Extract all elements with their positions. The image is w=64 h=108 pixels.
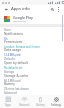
staticText: Permissions: [4, 40, 23, 44]
staticText: 2% since last charge: [4, 87, 29, 90]
staticText: No defaults set: [4, 66, 23, 69]
staticText: Network: [19, 103, 30, 107]
staticText: Defaults: [4, 57, 15, 61]
button[interactable]: Open by default: [0, 61, 64, 69]
button[interactable]: Back: [3, 6, 9, 12]
staticText: 12.4 MB used: [4, 53, 21, 56]
button[interactable]: Storage & cache: [0, 74, 64, 82]
staticText: Google Play: [13, 15, 33, 20]
staticText: Store: [4, 28, 11, 32]
staticText: On: [4, 37, 8, 40]
button[interactable]: Settings: [48, 95, 64, 108]
staticText: Advanced: [4, 91, 17, 95]
button[interactable]: Data usage: [0, 48, 64, 56]
staticText: Storage: [4, 70, 14, 74]
staticText: Battery: [36, 103, 45, 107]
staticText: Battery: [4, 82, 15, 86]
staticText: Settings: [51, 103, 62, 107]
staticText: Apps info: [11, 6, 30, 12]
button[interactable]: Search: [49, 6, 55, 12]
staticText: Data usage: [4, 48, 21, 52]
button[interactable]: Notifications: [0, 32, 64, 40]
staticText: Notifications: [4, 32, 23, 36]
button[interactable]: More options: [55, 6, 61, 12]
staticText: Apps: [5, 103, 12, 107]
button[interactable]: Battery: [32, 95, 48, 108]
staticText: Location, Storage and 3 more: [4, 45, 40, 48]
button[interactable]: Apps: [0, 95, 16, 108]
staticText: Open by default: [4, 61, 28, 65]
button[interactable]: Battery: [0, 82, 64, 90]
button[interactable]: Google Play: [0, 13, 64, 24]
button[interactable]: Network: [16, 95, 32, 108]
staticText: 84.2 MB used: [4, 79, 21, 82]
button[interactable]: Permissions: [0, 40, 64, 48]
staticText: Storage & cache: [4, 74, 29, 78]
